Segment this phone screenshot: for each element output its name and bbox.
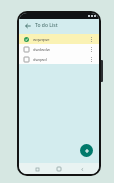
staticText: wqwqwe [33, 37, 88, 42]
button[interactable]: More options [88, 56, 95, 63]
button[interactable]: Home [54, 164, 64, 174]
button[interactable]: Add task [80, 144, 93, 157]
button[interactable]: Back [77, 164, 87, 174]
staticText: To do List [35, 22, 58, 29]
button[interactable]: Mark complete [19, 44, 99, 54]
staticText: dwdwdw [33, 47, 88, 52]
button[interactable]: Completed [23, 36, 30, 43]
button[interactable]: More options [88, 36, 95, 43]
button[interactable]: Back [23, 21, 32, 30]
button[interactable]: More options [88, 46, 95, 53]
button[interactable]: Mark complete [23, 46, 30, 53]
button[interactable]: Mark complete [23, 56, 30, 63]
button[interactable]: Recents [32, 164, 42, 174]
staticText: dwqwd [33, 57, 88, 62]
button[interactable]: Mark complete [19, 54, 99, 64]
button[interactable]: Completed [19, 34, 99, 44]
